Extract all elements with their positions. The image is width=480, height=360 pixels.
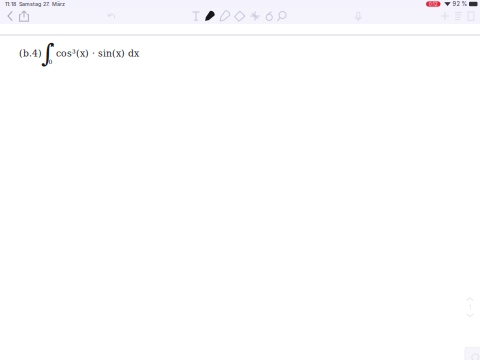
button[interactable]: Page view	[464, 8, 478, 24]
staticText: (b.4)	[19, 48, 42, 59]
button[interactable]: Add page	[438, 8, 452, 24]
button[interactable]: Share	[17, 8, 31, 24]
staticText: π	[50, 41, 54, 48]
staticText: 0:12	[429, 1, 438, 7]
staticText: 92 %	[452, 0, 467, 7]
staticText: 0	[48, 58, 52, 65]
staticText: 11:18	[5, 1, 16, 7]
button[interactable]: Shapes	[233, 8, 247, 24]
button[interactable]: Highlighter	[218, 8, 232, 24]
button[interactable]: Back	[3, 8, 17, 24]
button[interactable]: Text tool	[189, 8, 203, 24]
button[interactable]: Select	[248, 8, 262, 24]
button[interactable]: Zoom	[465, 347, 480, 360]
button[interactable]: Page thumbnails	[452, 8, 466, 24]
staticText: ∫	[41, 39, 54, 68]
button[interactable]: Page navigation	[463, 292, 477, 322]
staticText: 1	[468, 303, 471, 311]
button[interactable]: Lasso	[275, 8, 289, 24]
staticText: cos³(x) · sin(x) dx	[56, 48, 139, 59]
button[interactable]: Pen	[203, 8, 217, 24]
button[interactable]: Record audio	[351, 8, 365, 24]
staticText: Samstag 27. März	[19, 1, 65, 7]
button[interactable]: Eraser	[262, 8, 276, 24]
button[interactable]: Undo	[104, 8, 118, 24]
